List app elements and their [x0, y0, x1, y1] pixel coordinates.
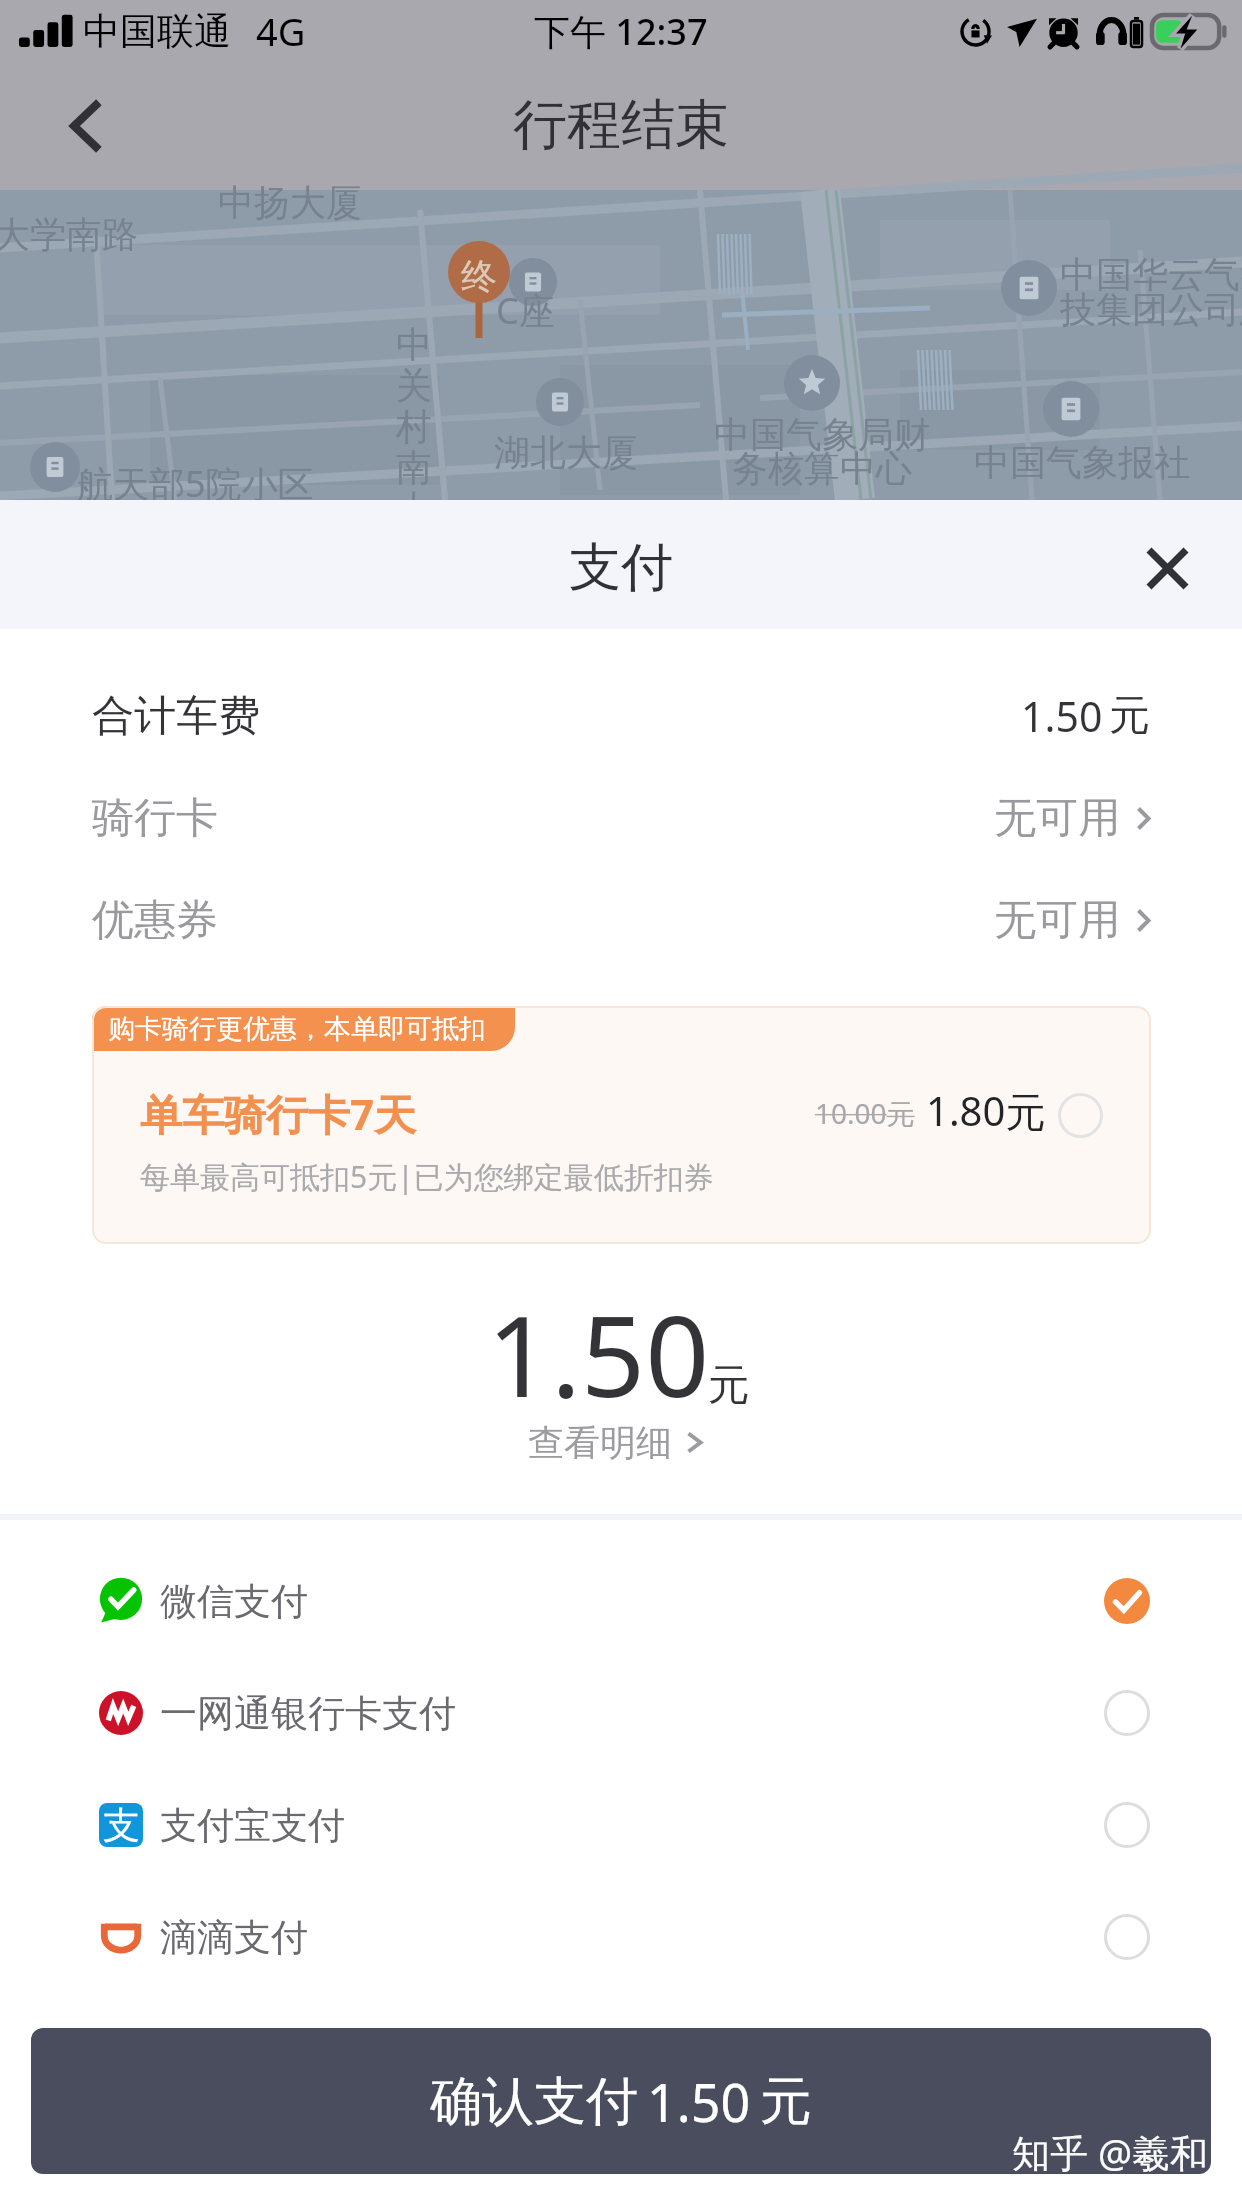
- button[interactable]: 确认支付: [31, 2028, 1211, 2174]
- button[interactable]: 支: [0, 1769, 1242, 1881]
- button[interactable]: Close: [1112, 513, 1222, 623]
- button[interactable]: 一网通银行卡支付: [0, 1657, 1242, 1769]
- button[interactable]: 查看明细: [522, 1418, 708, 1467]
- staticText: 知乎 @羲和: [1012, 2126, 1209, 2178]
- staticText: 合计车费: [92, 690, 260, 743]
- staticText: 单车骑行卡7天: [140, 1085, 417, 1142]
- button[interactable]: Back: [20, 62, 150, 190]
- staticText: 中国气象报社: [974, 440, 1190, 485]
- staticText: 中扬大厦: [218, 180, 362, 225]
- staticText: 行程结束: [513, 91, 729, 159]
- staticText: 骑行卡: [92, 792, 218, 845]
- staticText: 大学南路: [0, 212, 138, 257]
- button[interactable]: 购卡骑行更优惠，本单即可抵扣: [92, 1006, 1151, 1244]
- staticText: C座: [496, 286, 555, 335]
- button[interactable]: 骑行卡: [0, 767, 1242, 869]
- staticText: 技集团公司总: [1060, 287, 1242, 332]
- staticText: 购卡骑行更优惠，本单即可抵扣: [108, 1012, 486, 1046]
- button[interactable]: 滴滴支付: [0, 1881, 1242, 1993]
- staticText: 支: [103, 1803, 140, 1846]
- staticText: 终: [461, 254, 497, 299]
- staticText: 4G: [256, 5, 306, 57]
- staticText: 1.50: [647, 2066, 751, 2137]
- staticText: 滴滴支付: [160, 1914, 308, 1961]
- staticText: 下午 12:37: [534, 7, 708, 56]
- staticText: 无可用: [994, 894, 1120, 947]
- staticText: 元: [708, 1359, 750, 1412]
- staticText: 无可用: [994, 792, 1120, 845]
- staticText: 一网通银行卡支付: [160, 1690, 456, 1737]
- button[interactable]: 合计车费: [0, 665, 1242, 767]
- button[interactable]: 优惠券: [0, 869, 1242, 971]
- staticText: 微信支付: [160, 1578, 308, 1625]
- staticText: 支付: [569, 535, 673, 601]
- staticText: 支付宝支付: [160, 1802, 345, 1849]
- staticText: 中国华云气象: [1060, 252, 1242, 297]
- staticText: 优惠券: [92, 894, 218, 947]
- staticText: 确认支付: [430, 2069, 638, 2135]
- staticText: 10.00元: [815, 1094, 915, 1132]
- staticText: 元: [760, 2069, 812, 2135]
- staticText: 元: [1109, 690, 1150, 742]
- staticText: 1.50: [1021, 688, 1103, 744]
- staticText: 湖北大厦: [494, 430, 638, 475]
- staticText: 务核算中心: [732, 446, 912, 491]
- staticText: 中国联通: [83, 8, 231, 55]
- staticText: 每单最高可抵扣5元|已为您绑定最低折扣券: [140, 1156, 714, 1197]
- staticText: 中 关 村 南 大: [396, 322, 432, 531]
- staticText: 查看明细: [528, 1420, 672, 1465]
- staticText: 航天部5院小区: [77, 459, 314, 508]
- staticText: 1.80元: [926, 1083, 1046, 1138]
- button[interactable]: 微信支付: [0, 1545, 1242, 1657]
- staticText: 1.50: [487, 1277, 710, 1430]
- staticText: 中国气象局财: [714, 412, 930, 457]
